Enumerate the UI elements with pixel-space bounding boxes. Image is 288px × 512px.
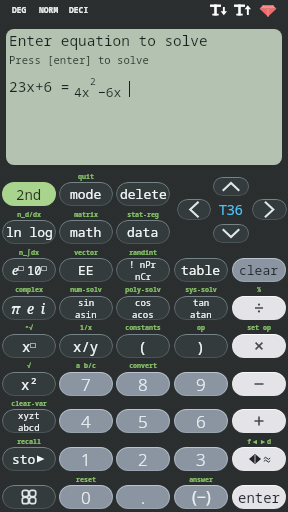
staticText: Press [enter] to solve [9, 53, 149, 67]
staticText: answer [189, 475, 213, 484]
button[interactable]: Move right [252, 199, 287, 220]
button[interactable]: DEG [12, 4, 27, 15]
button[interactable]: sto [2, 447, 56, 471]
button[interactable]: π e i [2, 296, 56, 320]
staticText: √ [27, 361, 31, 370]
button[interactable]: NORM [39, 4, 59, 15]
button[interactable]: cos [116, 296, 170, 320]
staticText: n_∫dx [19, 248, 39, 257]
staticText: set op [247, 323, 271, 332]
staticText: nCr [135, 270, 152, 282]
button[interactable]: Plus [232, 409, 286, 433]
button[interactable]: EE [59, 258, 113, 282]
button[interactable]: 4 [59, 409, 113, 433]
staticText: matrix [74, 210, 98, 219]
button[interactable]: e□ [2, 258, 56, 282]
staticText: clear [239, 261, 279, 279]
staticText: 2 [90, 75, 96, 88]
button[interactable]: tan [174, 296, 228, 320]
button[interactable]: ( [116, 334, 170, 358]
button[interactable]: Increase text size [233, 2, 252, 18]
button[interactable]: Multiply [232, 334, 286, 358]
staticText: T36 [219, 200, 243, 218]
button[interactable]: clear [232, 258, 286, 282]
staticText: π e i [11, 299, 47, 318]
staticText: data [127, 223, 159, 241]
staticText: sto [12, 450, 36, 468]
staticText: −6x [98, 83, 122, 101]
staticText: abcd [18, 421, 40, 433]
staticText: complex [15, 285, 43, 294]
button[interactable]: 9 [174, 372, 228, 396]
button[interactable]: x² [2, 372, 56, 396]
staticText: 4 [81, 410, 91, 433]
staticText: ) [196, 336, 206, 356]
button[interactable]: . [116, 485, 170, 509]
staticText: quit [78, 172, 94, 181]
button[interactable]: mode [59, 182, 113, 206]
button[interactable]: math [59, 220, 113, 244]
staticText: 2 [138, 448, 148, 471]
staticText: ln log [6, 223, 53, 241]
button[interactable]: 0 [59, 485, 113, 509]
button[interactable]: 3 [174, 447, 228, 471]
staticText: Enter equation to solve [9, 31, 208, 51]
button[interactable]: Apps [2, 485, 56, 509]
button[interactable]: (−) [174, 485, 228, 509]
staticText: n_d/dx [17, 210, 41, 219]
button[interactable]: Premium [259, 2, 277, 18]
staticText: 4x [74, 83, 90, 101]
button[interactable]: Scroll down [213, 224, 249, 243]
staticText: 8 [138, 373, 148, 396]
button[interactable]: Minus [232, 372, 286, 396]
staticText: 9 [196, 373, 206, 396]
button[interactable]: Scroll up [213, 177, 249, 196]
button[interactable]: 6 [174, 409, 228, 433]
button[interactable]: x/y [59, 334, 113, 358]
staticText: poly-solv [125, 285, 161, 294]
button[interactable]: 2 [116, 447, 170, 471]
staticText: ! nPr [129, 258, 157, 270]
staticText: asin [75, 308, 97, 320]
button[interactable]: ) [174, 334, 228, 358]
button[interactable]: table [174, 258, 228, 282]
staticText: sys-solv [185, 285, 217, 294]
staticText: sin [78, 296, 95, 308]
button[interactable]: ln log [2, 220, 56, 244]
button[interactable]: 8 [116, 372, 170, 396]
staticText: % [257, 285, 261, 294]
button[interactable]: 5 [116, 409, 170, 433]
button[interactable]: Move left [177, 199, 211, 220]
staticText: convert [129, 361, 157, 370]
staticText: num-solv [70, 285, 102, 294]
button[interactable]: Decrease text size [209, 2, 228, 18]
staticText: 2nd [16, 185, 42, 204]
button[interactable]: Toggle fraction decimal [232, 447, 286, 471]
staticText: ( [138, 336, 148, 356]
button[interactable]: enter [232, 485, 286, 509]
button[interactable]: xyzt [2, 409, 56, 433]
staticText: constants [125, 323, 161, 332]
button[interactable]: 1 [59, 447, 113, 471]
staticText: tan [193, 296, 210, 308]
button[interactable]: delete [116, 182, 170, 206]
staticText: reset [76, 475, 96, 484]
staticText: table [181, 261, 221, 279]
staticText: randint [129, 248, 157, 257]
staticText: recall [17, 437, 41, 446]
button[interactable]: sin [59, 296, 113, 320]
button[interactable]: 2nd [2, 182, 56, 206]
button[interactable]: DECI [69, 4, 89, 15]
staticText: f◀▶d [247, 437, 271, 446]
staticText: vector [74, 248, 98, 257]
button[interactable]: 7 [59, 372, 113, 396]
staticText: x□ [22, 337, 36, 356]
staticText: EE [78, 261, 94, 279]
button[interactable]: data [116, 220, 170, 244]
staticText: clear-var [11, 399, 47, 408]
staticText: x/y [73, 337, 99, 356]
staticText: (−) [192, 486, 211, 508]
button[interactable]: ! nPr [116, 258, 170, 282]
button[interactable]: Divide [232, 296, 286, 320]
button[interactable]: x□ [2, 334, 56, 358]
